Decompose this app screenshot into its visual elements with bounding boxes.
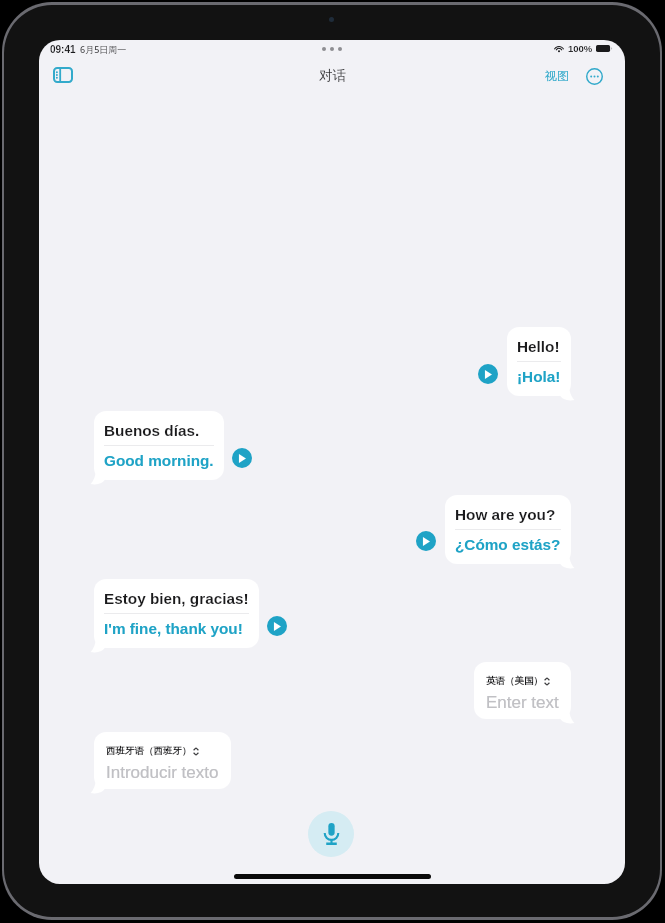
staticText: 英语（美国） xyxy=(486,675,543,687)
button[interactable]: 视图 xyxy=(542,63,572,88)
staticText: ¿Cómo estás? xyxy=(455,536,561,553)
button[interactable]: Hello! xyxy=(507,327,571,396)
staticText: 100% xyxy=(568,43,593,54)
staticText: Hello! xyxy=(517,338,560,355)
staticText: 09:41 xyxy=(50,44,76,55)
button[interactable]: How are you? xyxy=(445,495,571,564)
button[interactable]: Buenos días. xyxy=(94,411,224,480)
button[interactable]: Play translation xyxy=(416,531,436,551)
button[interactable]: 西班牙语（西班牙） xyxy=(94,732,231,789)
button[interactable]: 英语（美国） xyxy=(474,662,571,719)
staticText: Introducir texto xyxy=(106,763,219,782)
button[interactable]: Record audio xyxy=(308,811,354,857)
button[interactable]: Play translation xyxy=(478,364,498,384)
staticText: 西班牙语（西班牙） xyxy=(106,745,192,757)
button[interactable]: Estoy bien, gracias! xyxy=(94,579,259,648)
staticText: 视图 xyxy=(545,68,569,83)
button[interactable]: More options xyxy=(582,64,606,88)
button[interactable]: Play translation xyxy=(232,448,252,468)
staticText: Buenos días. xyxy=(104,422,200,439)
staticText: 6月5日周一 xyxy=(80,43,127,55)
staticText: Good morning. xyxy=(104,452,214,469)
button[interactable]: Play translation xyxy=(267,616,287,636)
staticText: ¡Hola! xyxy=(517,368,561,385)
button[interactable]: Show sidebar xyxy=(49,61,77,89)
staticText: Estoy bien, gracias! xyxy=(104,590,249,607)
staticText: How are you? xyxy=(455,506,556,523)
staticText: I'm fine, thank you! xyxy=(104,620,243,637)
staticText: 对话 xyxy=(319,67,346,84)
staticText: Enter text xyxy=(486,693,559,712)
